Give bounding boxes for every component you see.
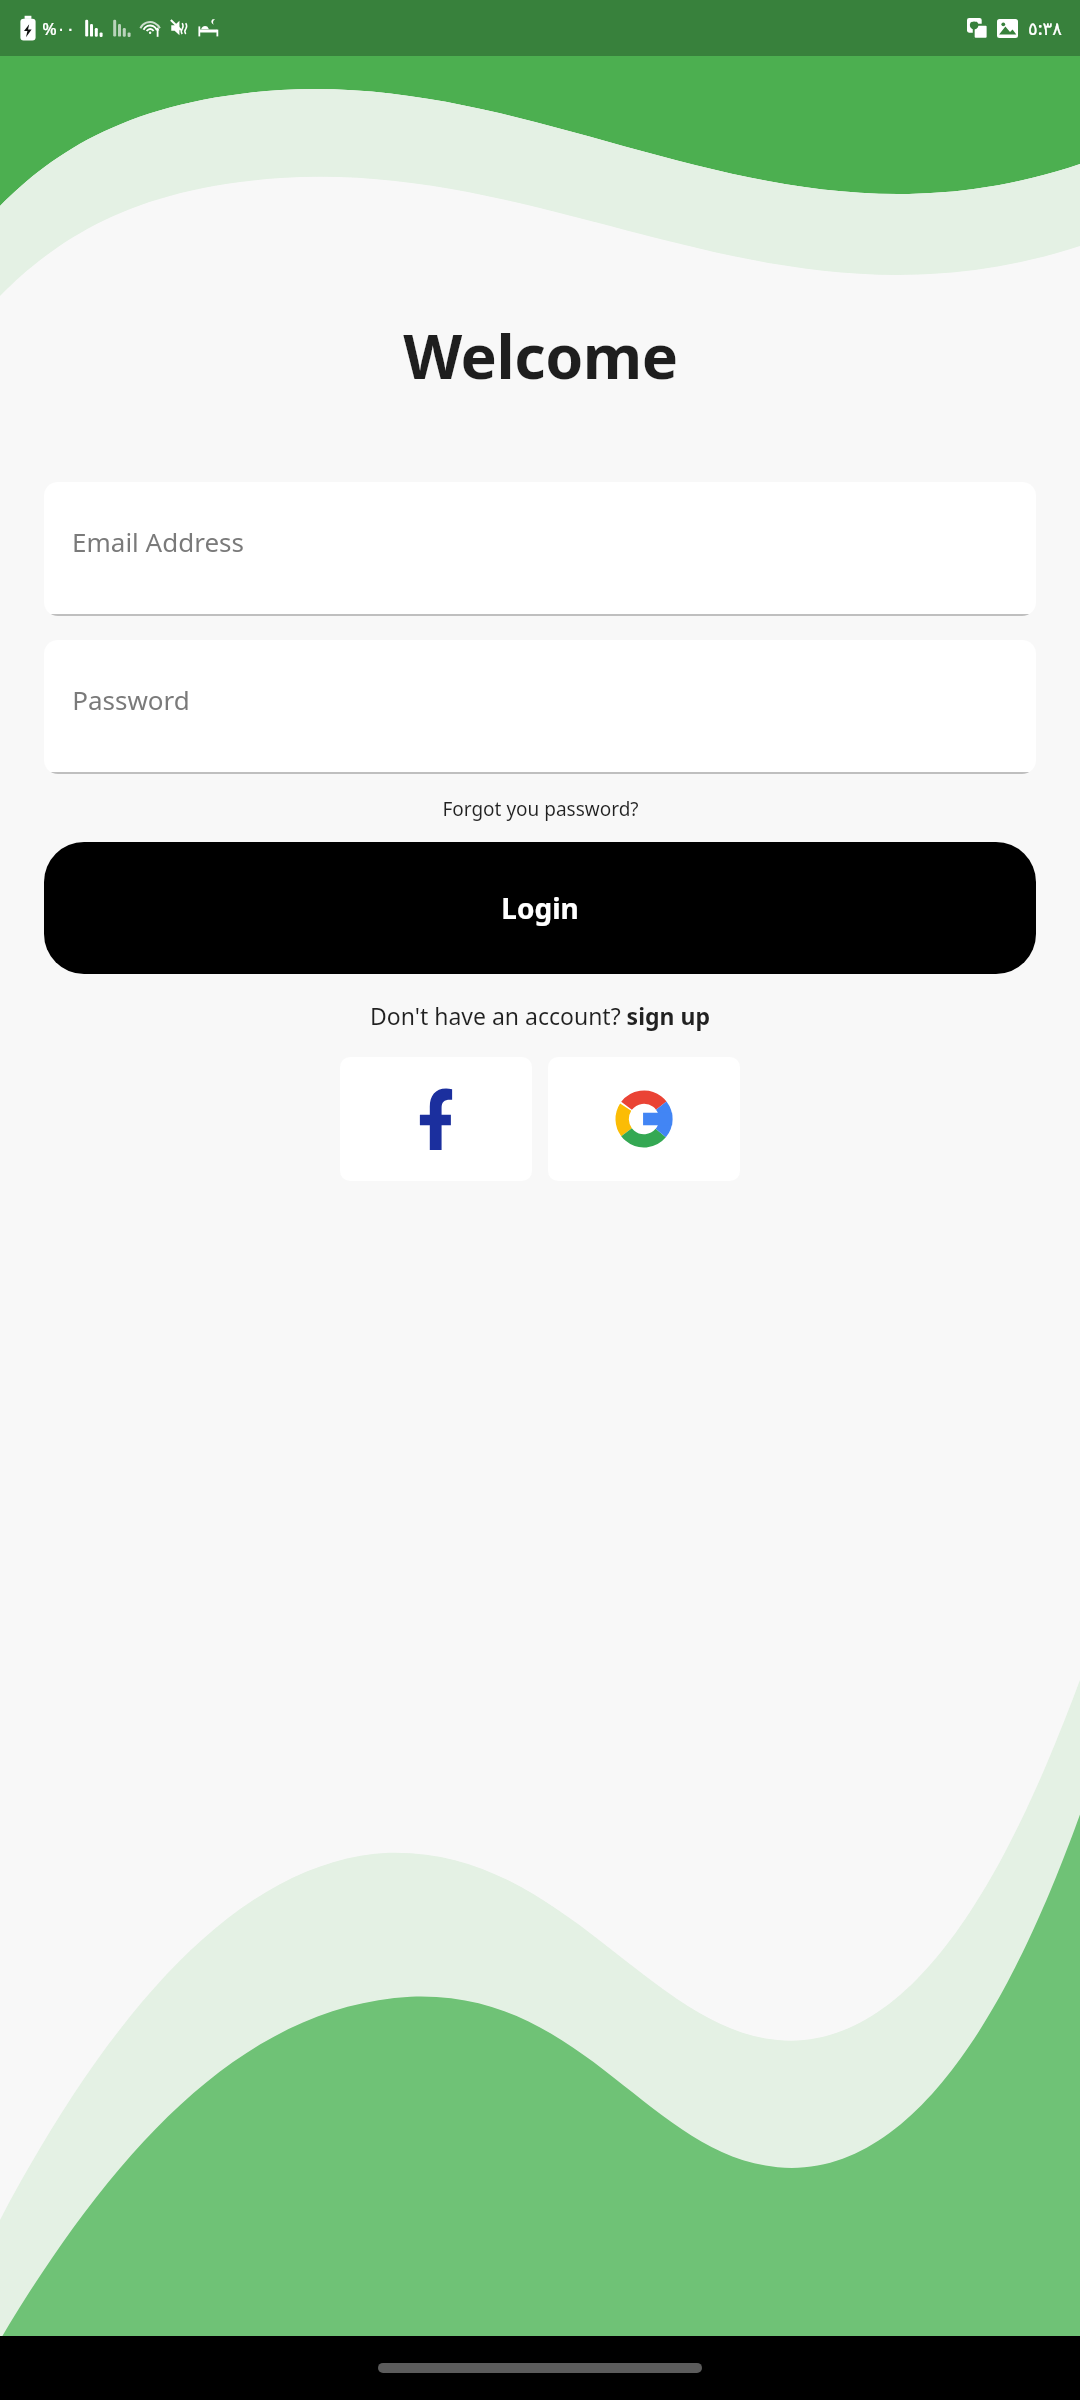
staticText: Welcome: [403, 314, 678, 397]
button[interactable]: Forgot you password?: [432, 792, 649, 826]
staticText: ٥:٣٨: [1028, 16, 1062, 41]
staticText: Don't have an account? sign up: [370, 1000, 710, 1031]
button[interactable]: Email Address: [44, 482, 1036, 616]
button[interactable]: Password: [44, 640, 1036, 774]
staticText: Forgot you password?: [442, 796, 639, 822]
staticText: Password: [72, 682, 190, 717]
button[interactable]: Sign in with Google: [548, 1057, 740, 1181]
button[interactable]: Sign in with Facebook: [340, 1057, 532, 1181]
button[interactable]: Don't have an account? sign up: [360, 996, 720, 1035]
staticText: Login: [501, 889, 579, 927]
button[interactable]: Login: [44, 842, 1036, 974]
staticText: Email Address: [72, 524, 244, 559]
staticText: %٠٠: [42, 17, 75, 40]
